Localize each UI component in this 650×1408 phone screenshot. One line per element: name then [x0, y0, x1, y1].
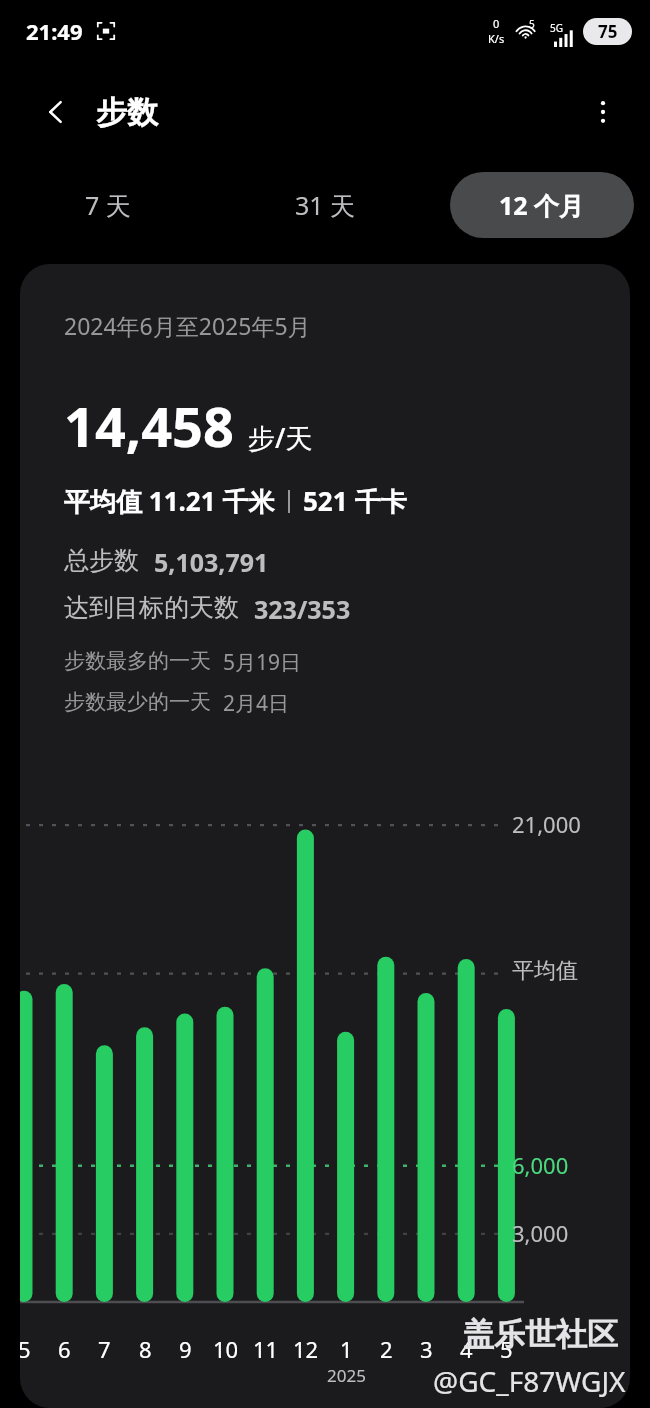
staticText: 2 — [380, 1334, 393, 1364]
staticText: 2月4日 — [223, 689, 290, 718]
staticText: 5 — [20, 1334, 31, 1364]
staticText: 步/天 — [248, 419, 313, 456]
staticText: 31 天 — [295, 188, 356, 222]
staticText: 7 天 — [85, 188, 131, 222]
staticText: 21:49 — [26, 16, 83, 46]
button[interactable]: Back — [32, 88, 80, 136]
staticText: 5 — [500, 1334, 513, 1364]
button[interactable]: 12 个月 — [450, 172, 634, 238]
staticText: 6 — [58, 1334, 71, 1364]
staticText: 1 — [340, 1334, 353, 1364]
staticText: 12 个月 — [499, 188, 585, 222]
staticText: 平均值 — [512, 957, 578, 985]
staticText: 5,103,791 — [154, 545, 269, 579]
staticText: 14,458 — [64, 389, 234, 463]
staticText: 7 — [98, 1334, 111, 1364]
staticText: 盖乐世社区 — [463, 1315, 618, 1354]
staticText: 521 千卡 — [303, 483, 407, 519]
button[interactable]: More options — [578, 87, 628, 137]
staticText: 2025 — [327, 1364, 366, 1387]
staticText: 步数最多的一天 — [64, 648, 211, 674]
staticText: 12 — [293, 1334, 319, 1364]
staticText: 21,000 — [512, 809, 581, 839]
staticText: 11 — [253, 1334, 279, 1364]
staticText: 步数最少的一天 — [64, 689, 211, 715]
staticText: 9 — [179, 1334, 192, 1364]
staticText: 8 — [139, 1334, 152, 1364]
staticText: 3 — [420, 1334, 433, 1364]
staticText: 总步数 — [64, 545, 139, 576]
staticText: 步数 — [96, 93, 158, 132]
staticText: 10 — [213, 1334, 239, 1364]
staticText: 3,000 — [512, 1218, 569, 1248]
staticText: 5月19日 — [223, 648, 302, 677]
staticText: 6,000 — [512, 1150, 569, 1180]
staticText: 4 — [460, 1334, 473, 1364]
staticText: 平均值 11.21 千米 — [64, 483, 275, 519]
button[interactable]: 7 天 — [16, 172, 200, 238]
staticText: 2024年6月至2025年5月 — [64, 310, 311, 341]
staticText: 75 — [598, 20, 618, 43]
staticText: 323/353 — [254, 592, 351, 626]
staticText: 达到目标的天数 — [64, 592, 239, 623]
staticText: 5G — [550, 21, 563, 35]
staticText: K/s — [488, 31, 505, 46]
staticText: 5 — [529, 17, 535, 31]
staticText: 0 — [493, 16, 500, 31]
staticText: @GC_F87WGJX — [433, 1362, 626, 1400]
button[interactable]: 31 天 — [233, 172, 417, 238]
